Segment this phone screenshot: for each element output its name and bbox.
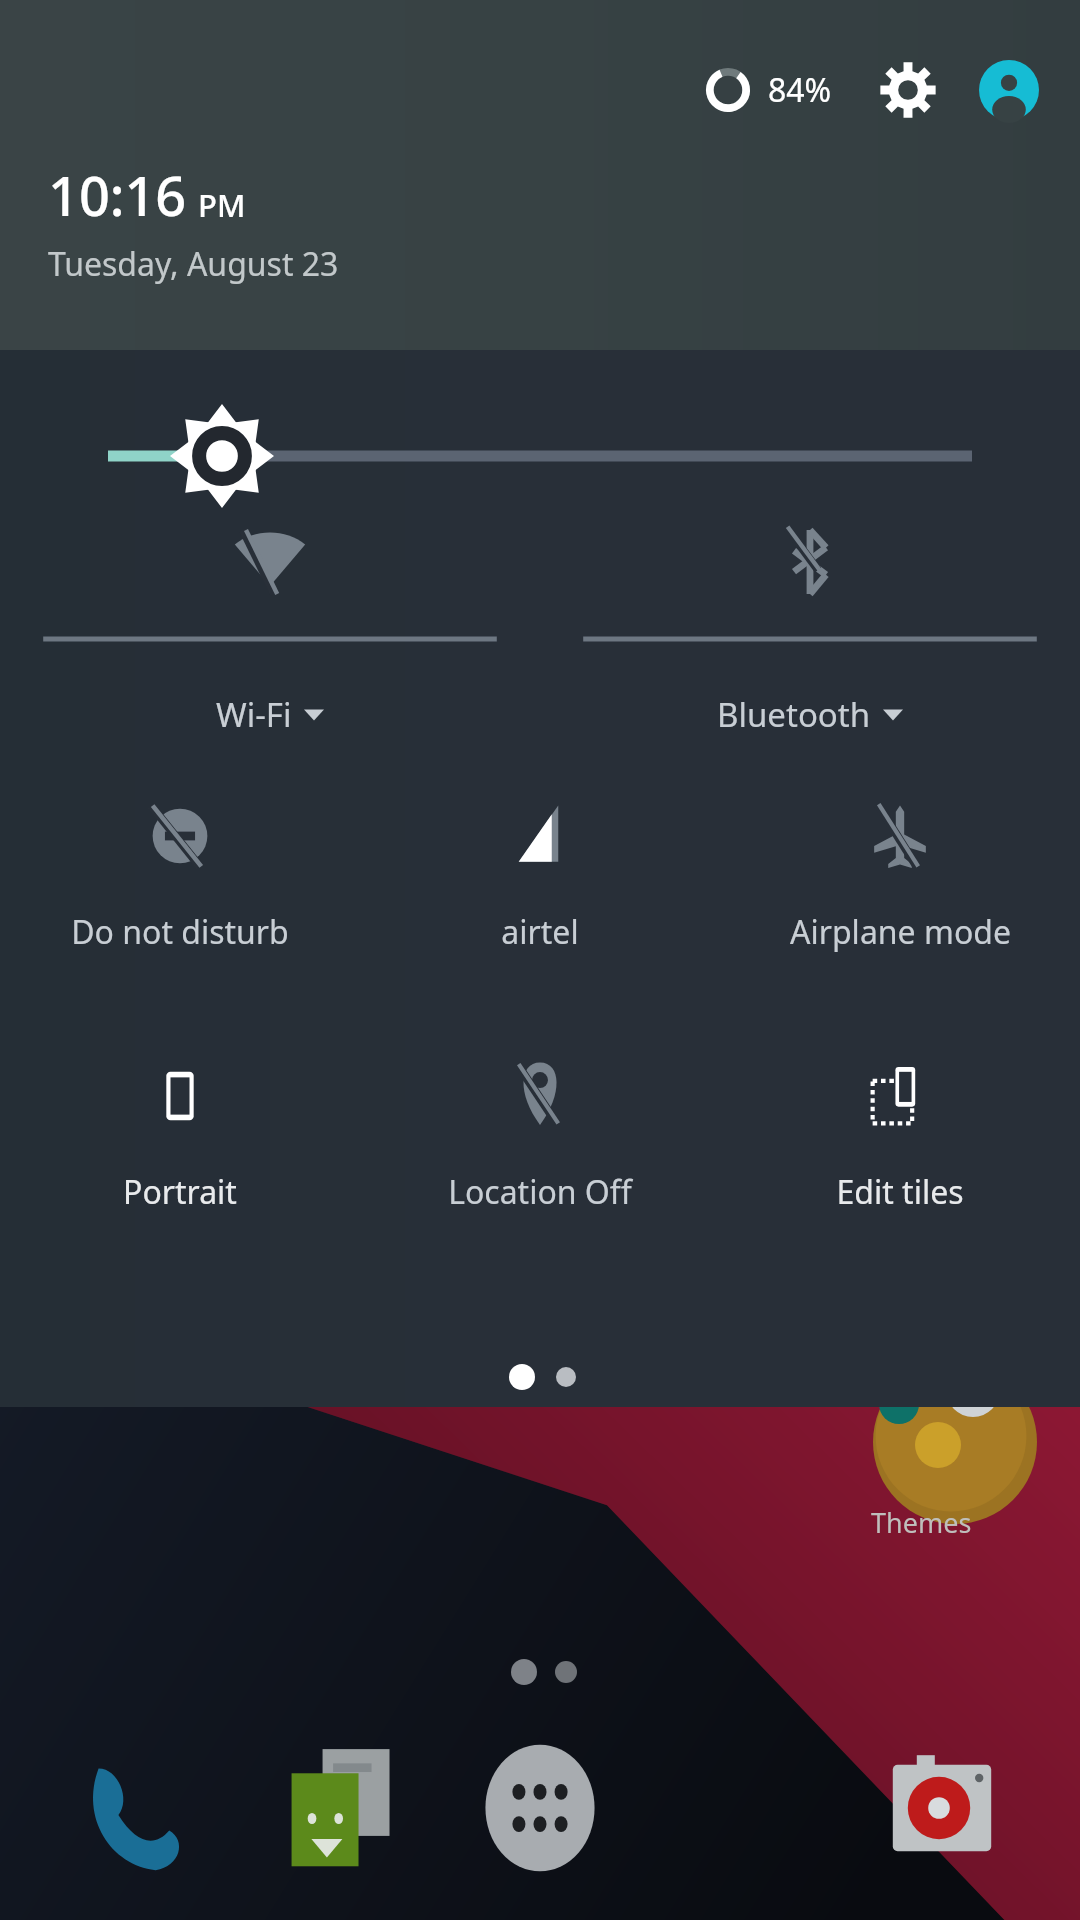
- button[interactable]: Wi-Fi: [0, 490, 540, 737]
- button[interactable]: Bluetooth: [540, 490, 1080, 737]
- staticText: Location Off: [448, 1170, 632, 1214]
- staticText: Do not disturb: [71, 910, 289, 954]
- button[interactable]: Brightness: [0, 350, 1080, 500]
- button[interactable]: Phone: [0, 1740, 270, 1890]
- staticText: Airplane mode: [790, 910, 1011, 954]
- button[interactable]: Battery 84 percent: [702, 64, 754, 116]
- staticText: 10:16: [48, 158, 187, 232]
- staticText: Themes: [871, 1504, 972, 1541]
- button[interactable]: User profile: [978, 59, 1040, 121]
- button[interactable]: Portrait: [0, 1040, 360, 1214]
- staticText: Wi-Fi: [216, 692, 292, 737]
- staticText: Bluetooth: [717, 692, 871, 737]
- staticText: Edit tiles: [836, 1170, 964, 1214]
- button[interactable]: Settings: [876, 58, 940, 122]
- button[interactable]: Apps: [540, 1740, 810, 1890]
- staticText: 84%: [768, 68, 832, 112]
- staticText: PM: [198, 184, 246, 226]
- staticText: Portrait: [123, 1170, 237, 1214]
- staticText: airtel: [501, 910, 579, 954]
- button[interactable]: Airplane mode: [720, 780, 1080, 954]
- button[interactable]: Edit tiles: [720, 1040, 1080, 1214]
- staticText: Tuesday, August 23: [48, 242, 339, 286]
- button[interactable]: Do not disturb: [0, 780, 360, 954]
- button[interactable]: Camera: [810, 1740, 1080, 1890]
- button[interactable]: airtel: [360, 780, 720, 954]
- button[interactable]: Location Off: [360, 1040, 720, 1214]
- button[interactable]: Messaging: [270, 1740, 540, 1890]
